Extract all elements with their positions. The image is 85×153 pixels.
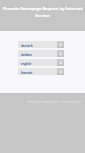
button[interactable]: Open italiano <box>57 50 64 57</box>
staticText: Phoenix Homepage Request by Internet Ser… <box>0 6 85 18</box>
button[interactable]: Open english <box>57 59 64 66</box>
staticText: english <box>21 62 32 66</box>
button[interactable]: deutsch <box>18 41 64 48</box>
button[interactable]: Open francais <box>57 68 64 75</box>
staticText: deutsch <box>21 44 33 48</box>
button[interactable]: Open deutsch <box>57 41 64 48</box>
button[interactable]: english <box>18 59 64 66</box>
button[interactable]: italiano <box>18 50 64 57</box>
button[interactable]: francais <box>18 68 64 75</box>
staticText: italiano <box>21 53 32 57</box>
staticText: Phoenix Homepage Request - © Internet Se… <box>24 100 84 104</box>
staticText: francais <box>21 71 33 75</box>
